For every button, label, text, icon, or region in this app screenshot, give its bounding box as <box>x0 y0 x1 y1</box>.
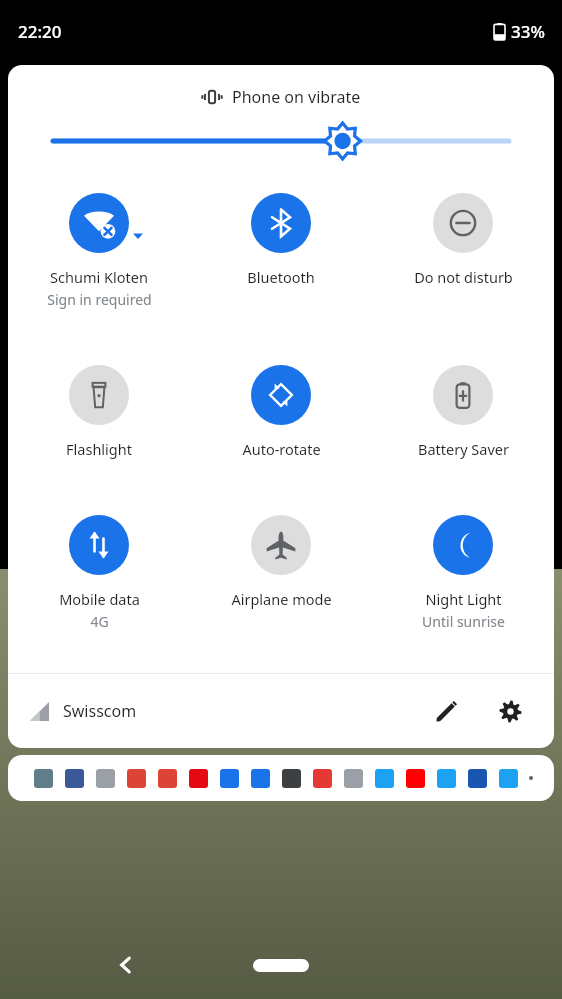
staticText: Sign in required <box>47 290 152 309</box>
staticText: Bluetooth <box>247 267 315 287</box>
button[interactable]: Schumi Kloten <box>8 193 190 309</box>
staticText: Until sunrise <box>422 612 505 631</box>
button[interactable]: Notification 2 <box>92 765 118 791</box>
staticText: 33% <box>511 20 545 43</box>
button[interactable]: Settings <box>488 689 532 733</box>
button[interactable]: Notification 1 <box>61 765 87 791</box>
button[interactable] <box>8 124 554 158</box>
button[interactable]: Back <box>104 943 148 987</box>
button[interactable]: Notification 13 <box>433 765 459 791</box>
staticText: Swisscom <box>63 700 137 722</box>
staticText: Airplane mode <box>231 589 332 609</box>
button[interactable]: Notification 0 <box>30 765 56 791</box>
button[interactable]: Notification 14 <box>464 765 490 791</box>
button[interactable]: Notification 7 <box>247 765 273 791</box>
button[interactable]: Notification 12 <box>402 765 428 791</box>
button[interactable]: Phone on vibrate <box>8 86 554 108</box>
button[interactable]: Night Light <box>372 515 554 631</box>
staticText: Do not disturb <box>414 267 513 287</box>
button[interactable]: Notification 8 <box>278 765 304 791</box>
button[interactable]: Edit <box>424 689 468 733</box>
staticText: Schumi Kloten <box>50 267 148 287</box>
button[interactable]: Bluetooth <box>190 193 372 287</box>
button[interactable]: Mobile data <box>8 515 190 631</box>
button[interactable]: Notification 6 <box>216 765 242 791</box>
button[interactable]: Flashlight <box>8 365 190 459</box>
button[interactable]: Airplane mode <box>190 515 372 609</box>
button[interactable]: Home <box>253 959 309 972</box>
button[interactable]: Do not disturb <box>372 193 554 287</box>
button[interactable]: Notification 4 <box>154 765 180 791</box>
button[interactable]: Battery Saver <box>372 365 554 459</box>
button[interactable]: Notification 3 <box>123 765 149 791</box>
staticText: Phone on vibrate <box>232 86 361 108</box>
button[interactable]: Notification 9 <box>309 765 335 791</box>
staticText: Battery Saver <box>418 439 509 459</box>
staticText: Flashlight <box>66 439 132 459</box>
staticText: 4G <box>90 612 109 631</box>
button[interactable]: Auto-rotate <box>190 365 372 459</box>
button[interactable]: Notification 11 <box>371 765 397 791</box>
button[interactable]: Notification 10 <box>340 765 366 791</box>
button[interactable]: Notification 5 <box>185 765 211 791</box>
staticText: Night Light <box>425 589 502 609</box>
staticText: 22:20 <box>18 20 62 43</box>
button[interactable]: Notification 15 <box>495 765 521 791</box>
staticText: Auto-rotate <box>242 439 321 459</box>
staticText: Mobile data <box>59 589 140 609</box>
